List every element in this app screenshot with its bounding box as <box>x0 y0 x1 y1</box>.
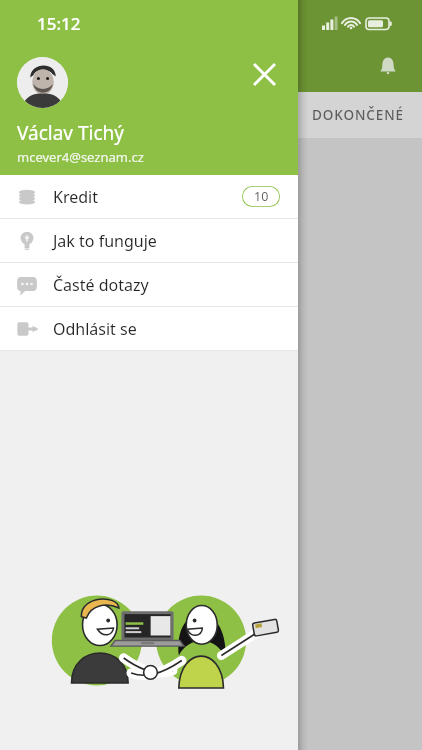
button[interactable]: Close <box>242 52 286 96</box>
staticText: Časté dotazy <box>53 274 149 296</box>
staticText: Jak to funguje <box>53 230 157 252</box>
staticText: DOKONČENÉ <box>312 106 404 124</box>
button[interactable]: Odhlásit se <box>0 307 298 350</box>
button[interactable]: Časté dotazy <box>0 263 298 306</box>
staticText: 15:12 <box>37 12 81 35</box>
button[interactable]: Refresh <box>225 153 269 197</box>
staticText: 10 <box>254 188 269 205</box>
staticText: hlášené <box>150 226 205 246</box>
button[interactable] <box>120 300 267 352</box>
button[interactable]: DOKONČENÉ <box>302 92 414 138</box>
button[interactable]: Notifications <box>368 46 408 86</box>
button[interactable]: Kredit <box>0 175 298 218</box>
staticText: Odhlásit se <box>53 318 137 340</box>
staticText: mcever4@seznam.cz <box>17 148 144 166</box>
button[interactable] <box>115 597 267 707</box>
staticText: Kredit <box>53 186 98 208</box>
button[interactable]: Jak to funguje <box>0 219 298 262</box>
button[interactable]: Profile photo <box>17 57 68 108</box>
staticText: Václav Tichý <box>17 120 124 146</box>
